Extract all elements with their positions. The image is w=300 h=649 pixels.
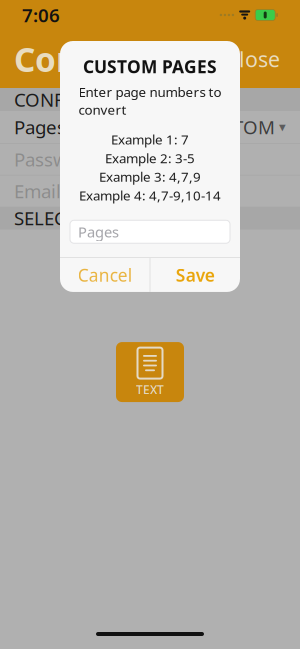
staticText: Save (176, 263, 215, 286)
staticText: CONFIGU (14, 87, 98, 112)
button[interactable]: Save (150, 258, 240, 292)
staticText: Example 2: 3-5 (105, 149, 195, 167)
staticText: Pages (78, 222, 119, 241)
button[interactable]: Cancel (60, 258, 150, 292)
staticText: Example 4: 4,7-9,10-14 (79, 186, 221, 204)
staticText: USTOM (209, 115, 275, 139)
staticText: ▾ (275, 119, 286, 134)
button[interactable]: Convert to TEXT (116, 342, 184, 402)
staticText: Enter page numbers to convert (78, 83, 221, 118)
staticText: TEXT (136, 382, 164, 397)
staticText: Close (226, 45, 280, 73)
staticText: Cancel (78, 263, 132, 286)
button[interactable]: Email(to (0, 176, 300, 207)
button[interactable]: Pages to (0, 111, 300, 143)
staticText: Password (14, 147, 97, 172)
button[interactable]: Close (220, 36, 286, 82)
staticText: CUSTOM PAGES (83, 55, 217, 78)
staticText: Pages to (14, 115, 89, 139)
staticText: Conv (14, 37, 97, 81)
staticText: Email(to (14, 179, 85, 203)
staticText: Example 3: 4,7,9 (99, 168, 201, 185)
staticText: SELECT (14, 206, 76, 230)
staticText: 7:06 (22, 3, 60, 27)
staticText: Example 1: 7 (111, 130, 189, 148)
button[interactable]: Password (0, 144, 300, 175)
